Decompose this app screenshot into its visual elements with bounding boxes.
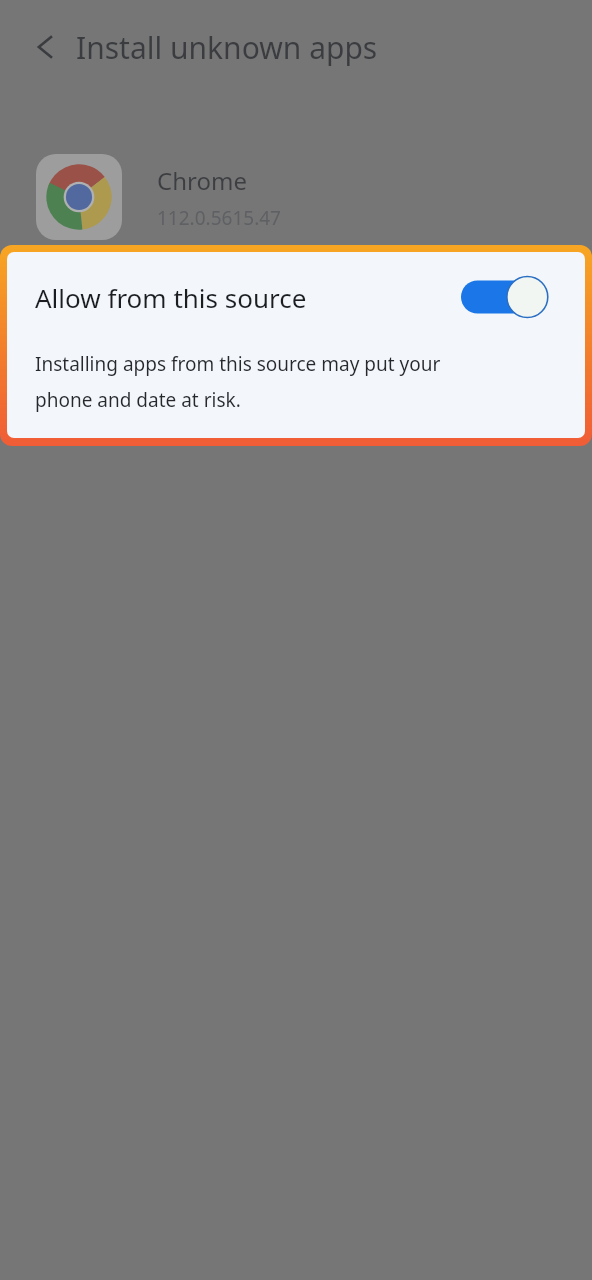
button[interactable]: Allow from this source toggle, on	[461, 275, 551, 319]
button[interactable]: Back	[20, 21, 72, 73]
staticText: Installing apps from this source may put…	[35, 351, 441, 377]
staticText: Chrome	[157, 164, 247, 197]
staticText: Install unknown apps	[76, 27, 378, 68]
button[interactable]: Allow from this source	[7, 252, 585, 342]
button[interactable]: Chrome	[0, 152, 592, 242]
staticText: 112.0.5615.47	[157, 205, 281, 231]
staticText: phone and date at risk.	[35, 387, 241, 413]
staticText: Allow from this source	[35, 280, 307, 315]
